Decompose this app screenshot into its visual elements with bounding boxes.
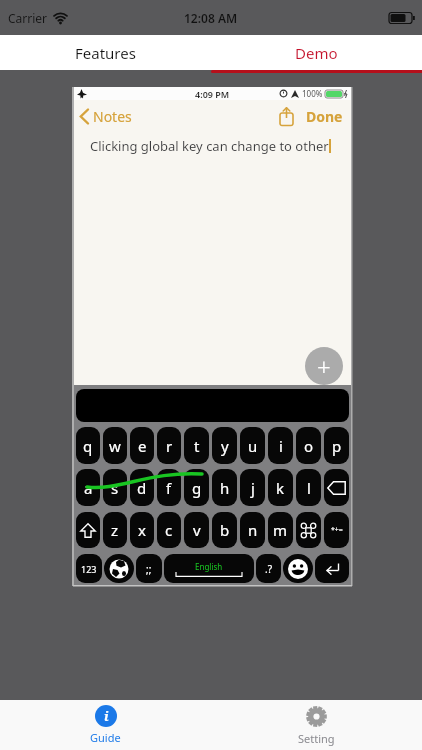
staticText: y: [221, 436, 229, 456]
staticText: x: [138, 520, 146, 540]
staticText: 4:09 PM: [195, 88, 230, 100]
staticText: Features: [75, 43, 136, 63]
staticText: Carrier: [8, 10, 48, 26]
staticText: 123: [81, 563, 97, 575]
staticText: u: [248, 436, 258, 456]
staticText: v: [193, 520, 201, 540]
staticText: c: [165, 520, 173, 540]
staticText: m: [273, 520, 288, 540]
staticText: i: [104, 707, 109, 725]
button[interactable]: i: [0, 700, 211, 750]
button[interactable]: Setting: [211, 700, 422, 750]
staticText: p: [332, 436, 342, 456]
staticText: a: [84, 478, 93, 498]
staticText: j: [251, 478, 255, 498]
staticText: n: [248, 520, 258, 540]
staticText: ;;: [146, 562, 152, 576]
staticText: r: [166, 436, 173, 456]
staticText: b: [220, 520, 230, 540]
staticText: d: [137, 478, 147, 498]
staticText: g: [192, 478, 202, 498]
staticText: w: [109, 436, 121, 456]
staticText: Demo: [295, 43, 338, 63]
button[interactable]: Demo: [211, 35, 422, 70]
staticText: q: [83, 436, 93, 456]
staticText: h: [220, 478, 230, 498]
staticText: Setting: [298, 731, 335, 746]
staticText: i: [279, 436, 283, 456]
staticText: s: [111, 478, 119, 498]
staticText: Done: [306, 107, 343, 126]
staticText: o: [304, 436, 314, 456]
staticText: *+=: [331, 525, 343, 535]
staticText: t: [194, 436, 200, 456]
staticText: z: [111, 520, 119, 540]
staticText: Clicking global key can change to other: [90, 137, 329, 155]
staticText: English: [195, 561, 223, 572]
staticText: 100%: [302, 88, 323, 99]
staticText: Notes: [93, 107, 132, 126]
staticText: e: [138, 436, 147, 456]
staticText: +: [317, 350, 331, 383]
staticText: Guide: [90, 730, 121, 745]
staticText: l: [307, 478, 311, 498]
staticText: k: [276, 478, 285, 498]
staticText: f: [166, 478, 172, 498]
staticText: 12:08 AM: [184, 10, 238, 26]
staticText: .?: [265, 562, 273, 576]
button[interactable]: Features: [0, 35, 211, 70]
